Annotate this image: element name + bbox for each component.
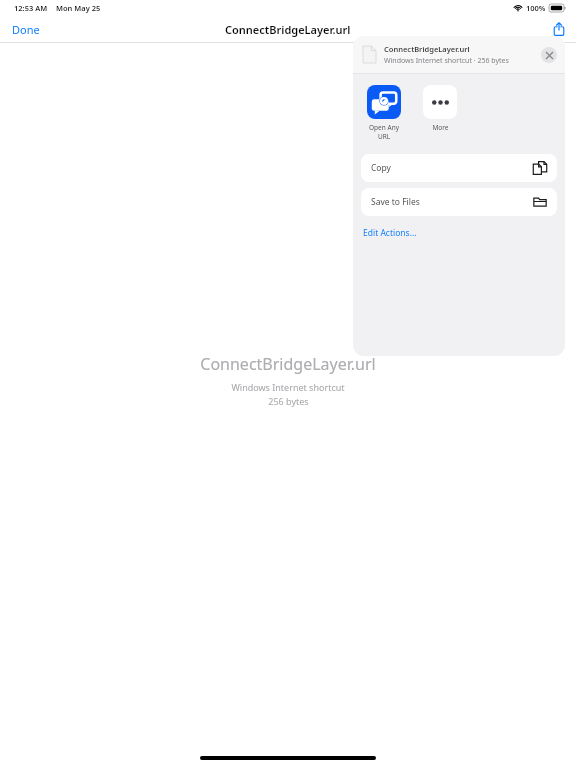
staticText: Windows Internet shortcut · 256 bytes xyxy=(384,56,509,66)
button[interactable]: Share xyxy=(548,18,570,40)
staticText: Mon May 25 xyxy=(56,3,101,13)
button[interactable]: More xyxy=(419,85,461,132)
button[interactable]: Copy xyxy=(361,154,557,182)
staticText: ConnectBridgeLayer.url xyxy=(384,44,470,54)
staticText: ConnectBridgeLayer.url xyxy=(225,22,351,37)
staticText: Windows Internet shortcut xyxy=(231,381,345,393)
staticText: Copy xyxy=(371,162,533,174)
staticText: More xyxy=(432,123,449,132)
staticText: 12:53 AM xyxy=(14,3,48,13)
staticText: Save to Files xyxy=(371,196,533,208)
button[interactable]: Done xyxy=(4,18,48,41)
button[interactable]: Close xyxy=(541,47,557,63)
button[interactable]: Edit Actions... xyxy=(363,224,417,242)
button[interactable]: Open Any URL xyxy=(363,85,405,141)
staticText: 256 bytes xyxy=(268,395,309,407)
staticText: Edit Actions... xyxy=(363,227,417,239)
staticText: Done xyxy=(12,22,40,37)
staticText: ConnectBridgeLayer.url xyxy=(200,353,376,375)
staticText: 100% xyxy=(526,3,546,13)
staticText: Open Any URL xyxy=(363,123,405,141)
button[interactable]: Save to Files xyxy=(361,188,557,216)
